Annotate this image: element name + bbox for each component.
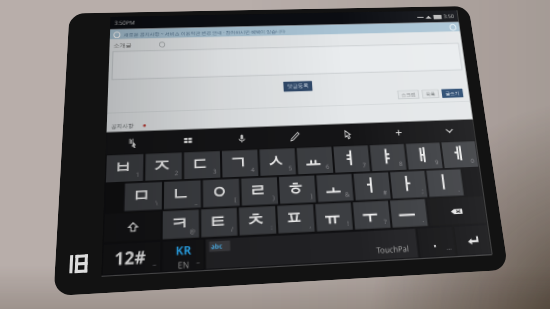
staticText: . <box>458 185 461 193</box>
staticText: ㅑ <box>377 146 395 168</box>
button[interactable]: ㅐ <box>406 143 443 169</box>
button[interactable]: ㄱ <box>222 150 258 177</box>
staticText: @ <box>189 227 196 236</box>
button[interactable]: — <box>390 199 428 228</box>
staticText: . <box>422 216 425 224</box>
staticText: 2 <box>175 169 179 177</box>
staticText: ㅋ <box>170 212 188 236</box>
button[interactable]: ㅍ <box>277 204 315 233</box>
staticText: 3:50 <box>443 13 455 20</box>
staticText: ··· <box>446 245 452 254</box>
staticText: ? <box>383 217 387 226</box>
button[interactable]: . <box>417 227 456 257</box>
staticText: 소개글 <box>113 42 132 49</box>
button[interactable] <box>104 211 161 242</box>
staticText: ㅎ <box>286 178 305 200</box>
button[interactable]: More <box>392 127 405 139</box>
button[interactable] <box>427 196 486 226</box>
staticText: ㅐ <box>413 145 432 166</box>
button[interactable]: ㅔ <box>441 141 478 168</box>
staticText: 7 <box>362 161 367 169</box>
button[interactable]: ㅈ <box>145 153 182 181</box>
staticText: ) <box>272 194 275 202</box>
staticText: ㄹ <box>248 180 267 202</box>
button[interactable]: ㅅ <box>259 148 296 176</box>
button[interactable]: 글쓰기 <box>445 90 460 96</box>
staticText: 3:50PM <box>114 19 135 27</box>
staticText: ㅌ <box>208 210 227 234</box>
staticText: ㅛ <box>304 149 322 171</box>
button[interactable]: abc <box>206 229 418 269</box>
button[interactable]: Layout <box>182 134 194 147</box>
button[interactable]: 12# <box>103 242 160 275</box>
button[interactable]: Draw <box>289 130 301 142</box>
button[interactable]: ㄹ <box>241 177 278 206</box>
staticText: 12# <box>114 245 146 271</box>
staticText: ㅏ <box>397 173 416 195</box>
staticText: ( <box>234 195 237 204</box>
button[interactable]: ㅁ <box>124 182 162 211</box>
button[interactable]: ㅇ <box>203 179 240 207</box>
button[interactable]: ㅑ <box>370 144 407 171</box>
button[interactable]: ㅕ <box>333 145 370 173</box>
button[interactable]: ㅎ <box>279 175 316 204</box>
button[interactable]: ㅋ <box>163 210 199 239</box>
staticText: 3 <box>213 167 217 176</box>
button[interactable]: Hide keyboard <box>443 125 456 137</box>
staticText: 9 <box>435 158 440 166</box>
button[interactable]: KR <box>162 239 204 272</box>
staticText: 공지사항 <box>111 123 134 130</box>
staticText: ㅅ <box>267 151 285 172</box>
button[interactable]: ㅌ <box>201 208 237 237</box>
staticText: ㄱ <box>229 152 247 174</box>
staticText: & <box>345 190 350 199</box>
staticText: TouchPal <box>376 243 410 255</box>
button[interactable]: ㅏ <box>390 171 427 198</box>
button[interactable]: ㅗ <box>316 174 354 202</box>
staticText: ㅗ <box>324 176 342 199</box>
staticText: 새로운 공지사항 ~ 서비스 이용약관 변경 안내 · 참여하시면 혜택이 있습… <box>124 28 286 38</box>
button[interactable]: Voice input <box>236 132 248 145</box>
button[interactable]: ㅓ <box>353 172 391 200</box>
staticText: ㅊ <box>246 209 265 232</box>
staticText: ㅕ <box>340 148 359 169</box>
staticText: ㅓ <box>361 175 379 197</box>
button[interactable]: ㄷ <box>184 151 220 179</box>
staticText: ) <box>310 192 313 200</box>
button[interactable]: ㅛ <box>297 147 333 174</box>
button[interactable]: ㅂ <box>106 154 143 182</box>
staticText: 4 <box>251 166 255 174</box>
staticText: 5 <box>288 164 293 172</box>
staticText: ㄴ <box>171 183 189 206</box>
button[interactable] <box>111 43 463 80</box>
staticText: 1 <box>136 171 140 179</box>
staticText: : <box>271 223 273 232</box>
button[interactable]: ㄴ <box>164 180 201 209</box>
staticText: ㅣ <box>433 172 453 193</box>
staticText: ㅠ <box>322 205 341 228</box>
staticText: _ <box>195 197 198 206</box>
staticText: ㅜ <box>360 203 379 226</box>
staticText: abc <box>211 242 223 251</box>
button[interactable]: ㅣ <box>426 169 464 197</box>
button[interactable]: 새로운 공지사항 ~ 서비스 이용약관 변경 안내 · 참여하시면 혜택이 있습… <box>110 22 460 39</box>
button[interactable]: 댓글등록 <box>287 83 309 90</box>
staticText: KR <box>176 241 192 259</box>
staticText: 목록 <box>425 91 435 97</box>
button[interactable]: Handwriting <box>127 136 140 149</box>
staticText: ! <box>347 219 350 228</box>
button[interactable]: Cursor <box>341 129 354 141</box>
staticText: 0 <box>470 157 475 165</box>
staticText: , <box>309 221 312 230</box>
button[interactable]: 스크랩 <box>401 92 416 98</box>
button[interactable]: ㅠ <box>315 203 353 232</box>
staticText: ㄷ <box>191 154 209 176</box>
staticText: 글쓰기 <box>445 90 460 96</box>
button[interactable]: ㅜ <box>353 201 391 230</box>
staticText: ㅈ <box>153 155 170 177</box>
button[interactable]: ㅊ <box>239 206 276 235</box>
button[interactable]: 목록 <box>425 91 435 97</box>
staticText: ‒ <box>153 261 157 270</box>
button[interactable] <box>454 225 491 255</box>
staticText: ㅍ <box>284 207 303 230</box>
